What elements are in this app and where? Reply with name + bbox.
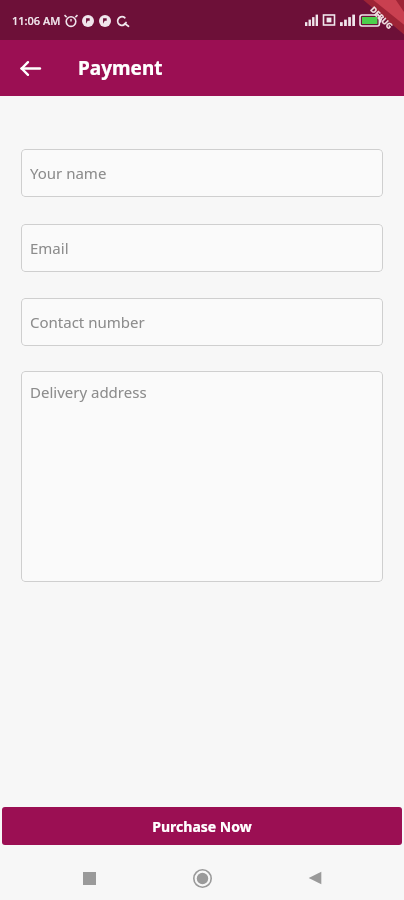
staticText: Contact number [30,312,145,332]
staticText: Delivery address [30,382,147,402]
button[interactable]: Contact number [21,298,383,346]
button[interactable]: Email [21,224,383,272]
staticText: Your name [30,163,107,183]
button[interactable]: Purchase Now [2,807,402,845]
button[interactable]: Home [178,856,226,900]
button[interactable]: Delivery address [21,371,383,582]
button[interactable]: Recent apps [65,856,113,900]
button[interactable]: Back [10,48,50,88]
staticText: DEBUG [368,4,396,31]
staticText: Payment [78,55,163,81]
button[interactable]: Back [291,856,339,900]
staticText: Email [30,238,69,258]
staticText: 11:06 AM [12,13,61,28]
button[interactable]: Your name [21,149,383,197]
staticText: Purchase Now [152,817,252,836]
